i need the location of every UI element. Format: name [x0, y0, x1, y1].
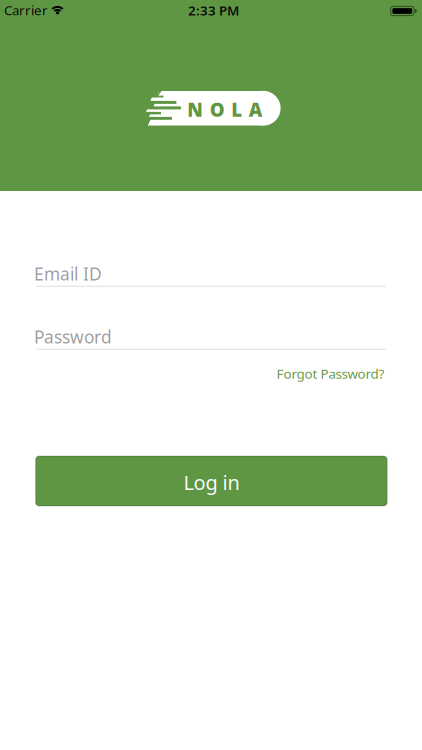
- staticText: L: [231, 97, 242, 122]
- staticText: Forgot Password?: [276, 365, 384, 382]
- staticText: Log in: [183, 469, 239, 496]
- button[interactable]: Password: [36, 325, 386, 350]
- staticText: Password: [34, 325, 112, 348]
- staticText: A: [249, 97, 263, 122]
- button[interactable]: Forgot Password?: [35, 365, 384, 382]
- staticText: Email ID: [34, 262, 102, 285]
- staticText: Carrier: [4, 1, 48, 19]
- button[interactable]: Email ID: [36, 262, 386, 287]
- button[interactable]: Log in: [36, 456, 387, 506]
- staticText: 2:33 PM: [188, 1, 239, 19]
- staticText: N: [187, 97, 203, 122]
- staticText: O: [210, 97, 225, 122]
